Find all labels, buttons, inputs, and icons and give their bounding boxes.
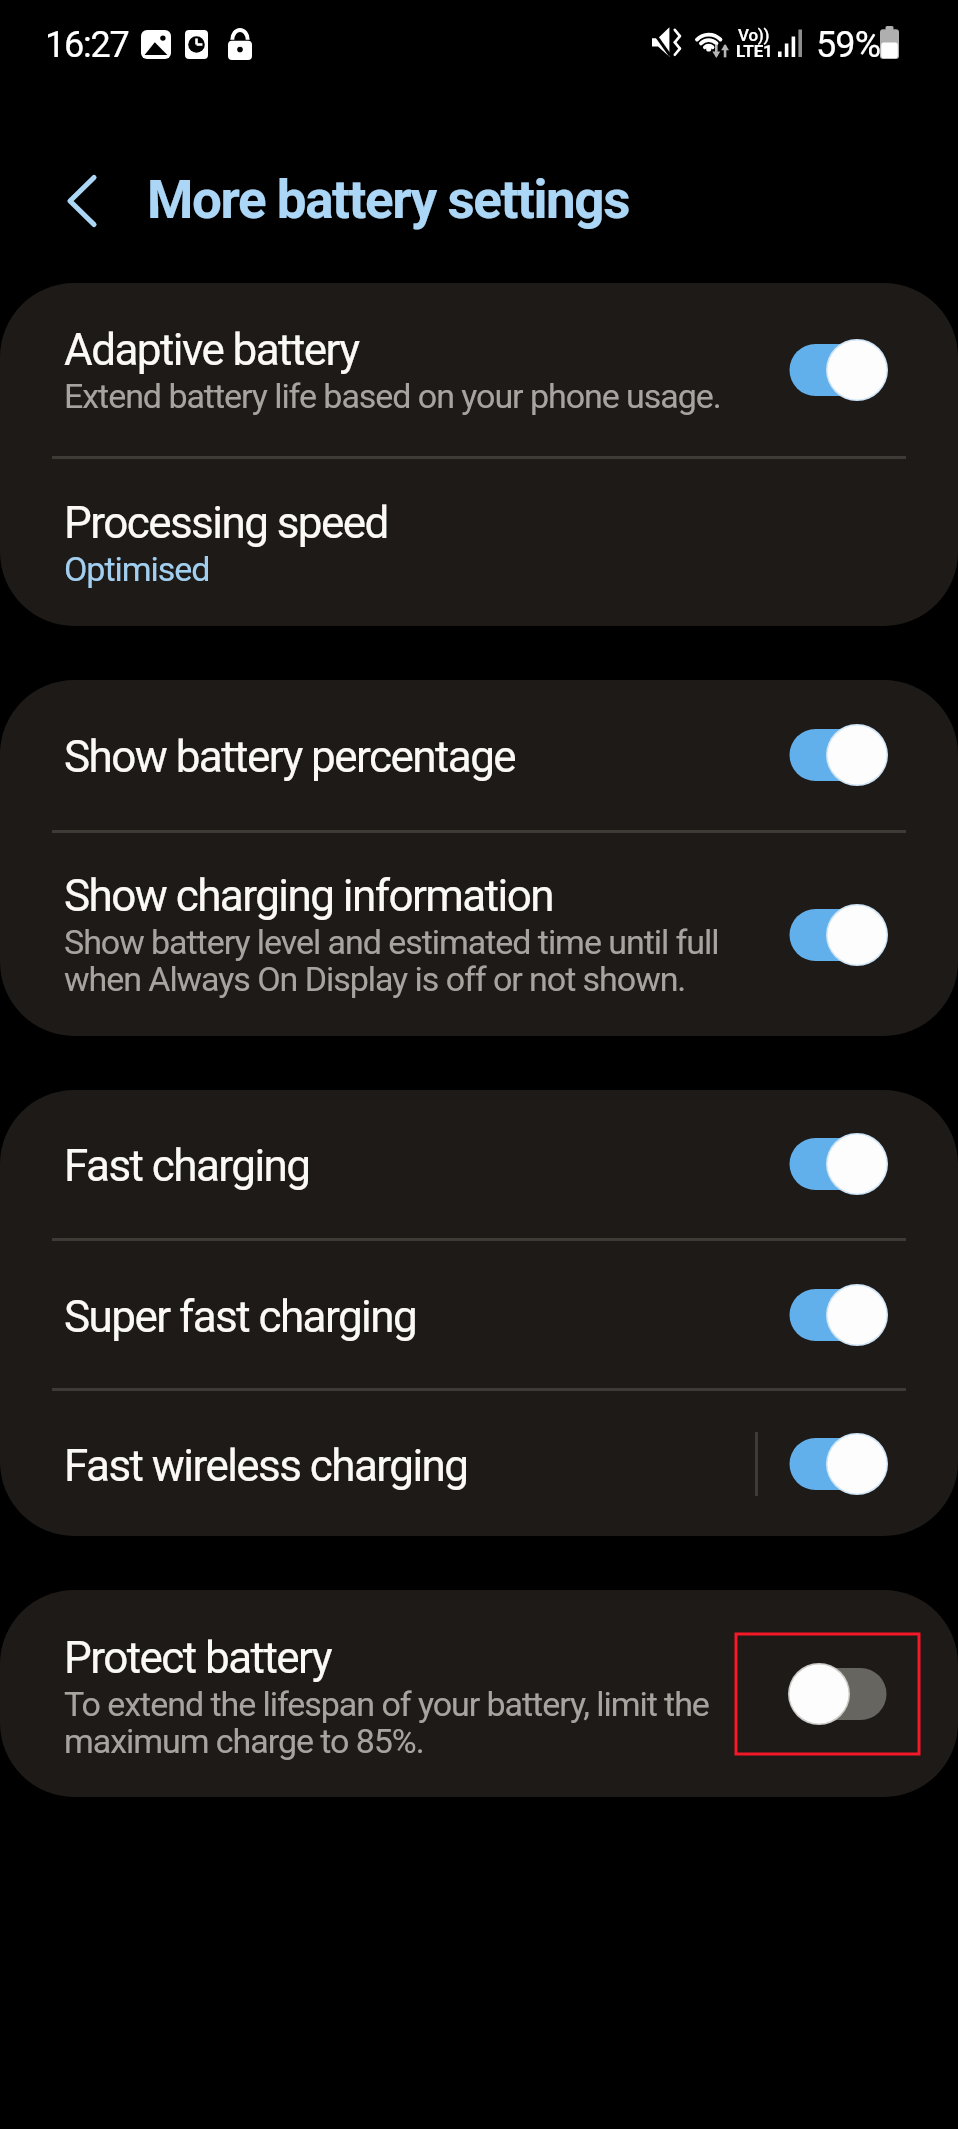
- button[interactable]: Switch on: [696, 1247, 896, 1383]
- button[interactable]: Processing speed: [0, 459, 958, 626]
- button[interactable]: Switch off: [696, 1626, 896, 1762]
- button[interactable]: Switch on: [696, 1396, 896, 1532]
- staticText: Adaptive battery: [64, 324, 359, 376]
- button[interactable]: Show charging information: [0, 833, 958, 1036]
- button[interactable]: Navigate up: [38, 157, 126, 245]
- button[interactable]: Fast charging: [0, 1090, 958, 1238]
- staticText: To extend the lifespan of your battery, …: [64, 1687, 709, 1761]
- staticText: Show charging information: [64, 870, 554, 922]
- button[interactable]: Protect battery: [0, 1590, 958, 1797]
- button[interactable]: Switch on: [696, 302, 896, 438]
- staticText: More battery settings: [147, 172, 629, 230]
- button[interactable]: Switch on: [696, 867, 896, 1003]
- button[interactable]: Super fast charging: [0, 1241, 958, 1388]
- staticText: Show battery percentage: [64, 731, 516, 783]
- staticText: Fast wireless charging: [64, 1440, 468, 1492]
- staticText: Fast charging: [64, 1140, 310, 1192]
- staticText: 16:27: [45, 25, 129, 65]
- staticText: LTE1: [736, 43, 773, 61]
- button[interactable]: Switch on: [696, 1096, 896, 1232]
- button[interactable]: Switch on: [696, 687, 896, 823]
- button[interactable]: Show battery percentage: [0, 680, 958, 830]
- staticText: Processing speed: [64, 497, 388, 549]
- button[interactable]: Adaptive battery: [0, 283, 958, 456]
- staticText: Vo)): [738, 27, 770, 45]
- staticText: Protect battery: [64, 1632, 332, 1684]
- staticText: Show battery level and estimated time un…: [64, 925, 719, 999]
- staticText: 59%: [816, 25, 881, 65]
- button[interactable]: Fast wireless charging: [0, 1391, 958, 1536]
- staticText: Super fast charging: [64, 1291, 417, 1343]
- staticText: Optimised: [64, 552, 210, 589]
- staticText: Extend battery life based on your phone …: [64, 379, 721, 416]
